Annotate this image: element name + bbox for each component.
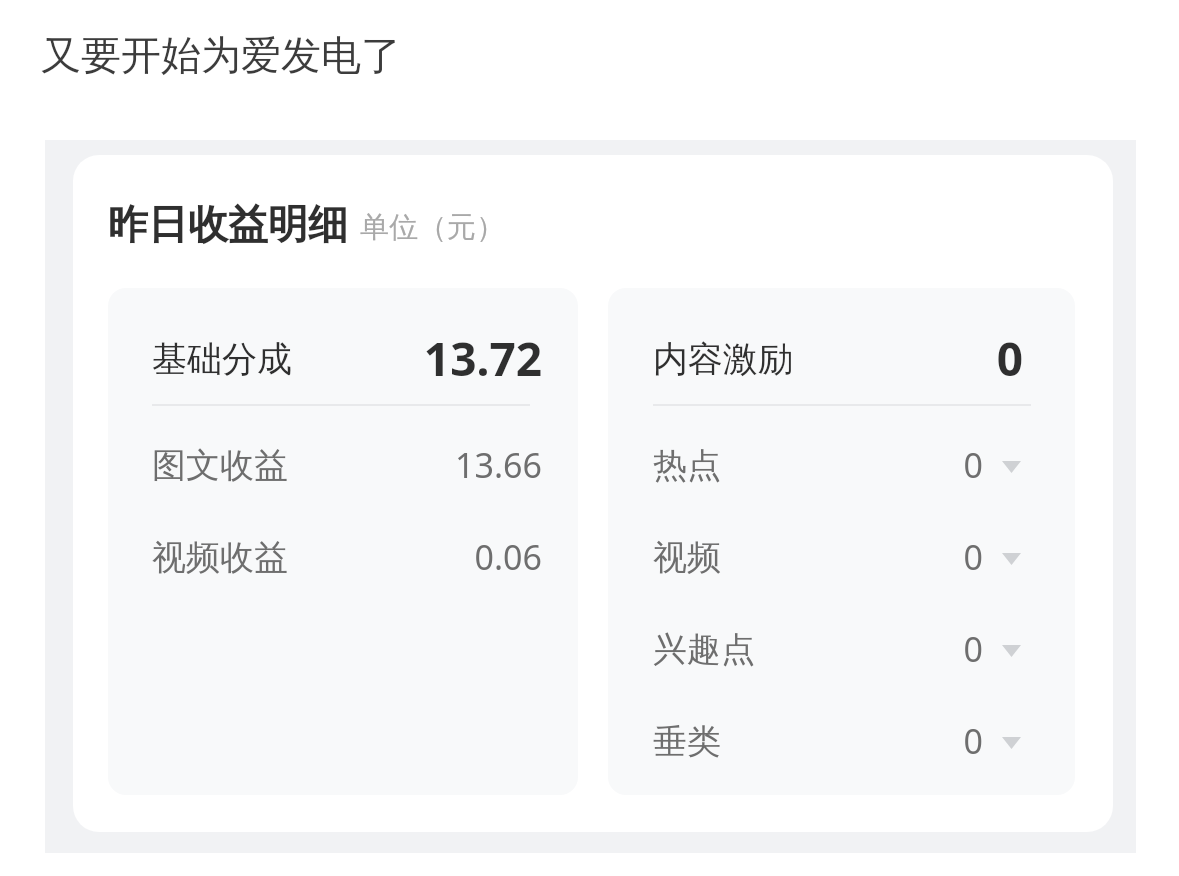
staticText: 视频收益 — [152, 536, 288, 579]
button[interactable]: 视频 — [608, 511, 1075, 603]
staticText: 又要开始为爱发电了 — [41, 30, 401, 80]
button[interactable]: 垂类 — [608, 695, 1075, 787]
staticText: 视频 — [653, 536, 721, 579]
staticText: 13.66 — [455, 442, 542, 488]
staticText: 0 — [963, 534, 983, 580]
staticText: 0 — [996, 327, 1023, 390]
staticText: 13.72 — [423, 327, 542, 390]
button[interactable]: 昨日收益明细 — [73, 155, 1113, 832]
staticText: 兴趣点 — [653, 628, 755, 671]
button[interactable]: 兴趣点 — [608, 603, 1075, 695]
other: Expand 兴趣点 — [1002, 644, 1021, 658]
staticText: 0 — [963, 718, 983, 764]
button[interactable]: 视频收益 — [108, 511, 578, 603]
staticText: 0 — [963, 626, 983, 672]
staticText: 昨日收益明细 — [108, 199, 348, 249]
staticText: 内容激励 — [653, 337, 793, 381]
other: Expand 垂类 — [1002, 736, 1021, 750]
other: Expand 热点 — [1002, 460, 1021, 474]
staticText: 0 — [963, 442, 983, 488]
button[interactable]: 热点 — [608, 419, 1075, 511]
staticText: 垂类 — [653, 720, 721, 763]
other: Expand 视频 — [1002, 552, 1021, 566]
staticText: 0.06 — [474, 534, 542, 580]
staticText: 图文收益 — [152, 444, 288, 487]
staticText: 单位（元） — [360, 209, 505, 246]
staticText: 基础分成 — [152, 337, 292, 381]
button[interactable]: 图文收益 — [108, 419, 578, 511]
staticText: 热点 — [653, 444, 721, 487]
